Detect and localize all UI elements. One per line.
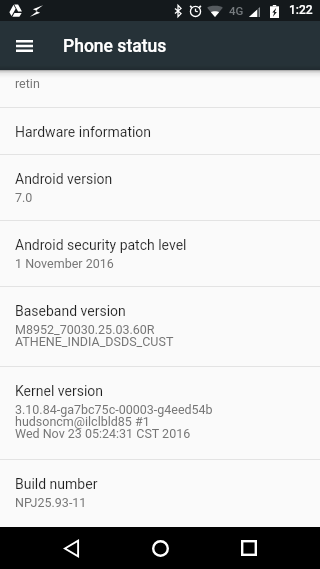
staticText: Android security patch level xyxy=(15,237,187,253)
staticText: retin xyxy=(15,76,40,91)
button[interactable]: Back xyxy=(48,527,94,569)
staticText: Android version xyxy=(15,171,113,187)
staticText: NPJ25.93-11 xyxy=(15,495,87,510)
staticText: Baseband version xyxy=(15,303,126,319)
staticText: Hardware information xyxy=(15,124,152,140)
button[interactable]: Open navigation drawer xyxy=(8,25,41,67)
button[interactable]: retin xyxy=(0,70,320,107)
button[interactable]: Android security patch level xyxy=(0,221,320,286)
staticText: 4G xyxy=(229,4,244,17)
staticText: M8952_70030.25.03.60R ATHENE_INDIA_DSDS_… xyxy=(15,322,174,349)
button[interactable]: Baseband version xyxy=(0,287,320,366)
button[interactable]: Home xyxy=(137,527,183,569)
staticText: 3.10.84-ga7bc75c-00003-g4eed54b hudsoncm… xyxy=(15,402,213,441)
button[interactable]: Recent apps xyxy=(226,527,272,569)
staticText: Phone status xyxy=(63,36,167,57)
staticText: Build number xyxy=(15,476,98,492)
staticText: 1 November 2016 xyxy=(15,256,114,271)
staticText: Kernel version xyxy=(15,383,104,399)
button[interactable]: Kernel version xyxy=(0,367,320,459)
staticText: 7.0 xyxy=(15,190,33,205)
button[interactable]: Android version xyxy=(0,155,320,220)
button[interactable]: Build number xyxy=(0,460,320,525)
staticText: 1:22 xyxy=(289,3,313,17)
button[interactable]: Hardware information xyxy=(0,108,320,154)
